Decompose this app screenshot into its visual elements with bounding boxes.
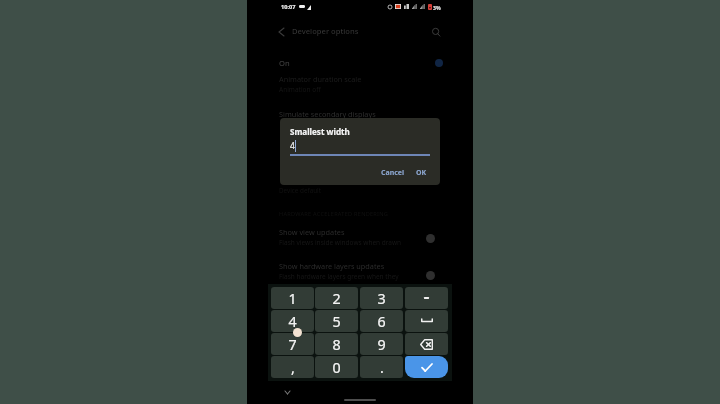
staticText: Simulate secondary displays xyxy=(279,109,376,119)
button[interactable]: space xyxy=(405,310,448,332)
button[interactable]: 6 xyxy=(360,310,403,332)
button[interactable]: 0 xyxy=(315,356,358,378)
button[interactable]: Hide keyboard xyxy=(279,384,295,400)
button[interactable]: 9 xyxy=(360,333,403,355)
button[interactable]: 1 xyxy=(271,287,314,309)
staticText: 3 xyxy=(377,289,386,308)
staticText: HARDWARE ACCELERATED RENDERING xyxy=(279,210,389,218)
staticText: 6 xyxy=(377,312,386,331)
staticText: 3% xyxy=(433,4,441,11)
button[interactable]: . xyxy=(360,356,403,378)
staticText: Flash views inside windows when drawn xyxy=(279,238,402,247)
button[interactable]: 4 xyxy=(271,310,314,332)
button[interactable]: Cancel xyxy=(377,165,409,181)
staticText: Developer options xyxy=(292,26,359,36)
button[interactable]: 8 xyxy=(315,333,358,355)
staticText: Show hardware layers updates xyxy=(279,261,385,271)
staticText: Animator duration scale xyxy=(279,74,362,84)
staticText: 1 xyxy=(288,289,297,308)
staticText: , xyxy=(291,358,295,377)
staticText: 4 xyxy=(290,140,295,151)
button[interactable]: Search xyxy=(427,23,445,41)
button[interactable]: 7 xyxy=(271,333,314,355)
staticText: 0 xyxy=(332,358,341,377)
staticText: Show view updates xyxy=(279,227,345,237)
staticText: Animation off xyxy=(279,85,321,94)
button[interactable]: 3 xyxy=(360,287,403,309)
button[interactable]: , xyxy=(271,356,314,378)
staticText: 2 xyxy=(332,289,341,308)
button[interactable]: OK xyxy=(412,165,431,181)
staticText: 5 xyxy=(332,312,341,331)
staticText: 8 xyxy=(332,335,341,354)
staticText: Smallest width xyxy=(290,126,350,137)
staticText: 7 xyxy=(288,335,297,354)
button[interactable]: Show hardware layers updates xyxy=(247,257,473,285)
staticText: 10:07 xyxy=(281,3,296,11)
button[interactable]: back xyxy=(405,333,448,355)
staticText: Device default xyxy=(279,186,321,195)
staticText: . xyxy=(380,358,384,377)
button[interactable]: On xyxy=(247,52,473,74)
staticText: Cancel xyxy=(381,168,405,178)
button[interactable]: Show view updates xyxy=(247,223,473,251)
staticText: Flash hardware layers green when they xyxy=(279,272,399,281)
button[interactable]: 2 xyxy=(315,287,358,309)
staticText: OK xyxy=(416,168,427,178)
staticText: On xyxy=(279,58,290,68)
button[interactable]: 5 xyxy=(315,310,358,332)
staticText: 4 xyxy=(288,312,297,331)
button[interactable]: enter xyxy=(405,356,448,378)
staticText: 9 xyxy=(377,335,386,354)
button[interactable]: minus xyxy=(405,287,448,309)
button[interactable]: Back xyxy=(272,23,290,41)
